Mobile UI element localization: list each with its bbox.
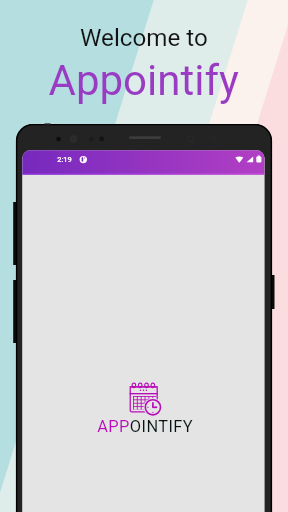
button[interactable]: [0, 0, 288, 512]
